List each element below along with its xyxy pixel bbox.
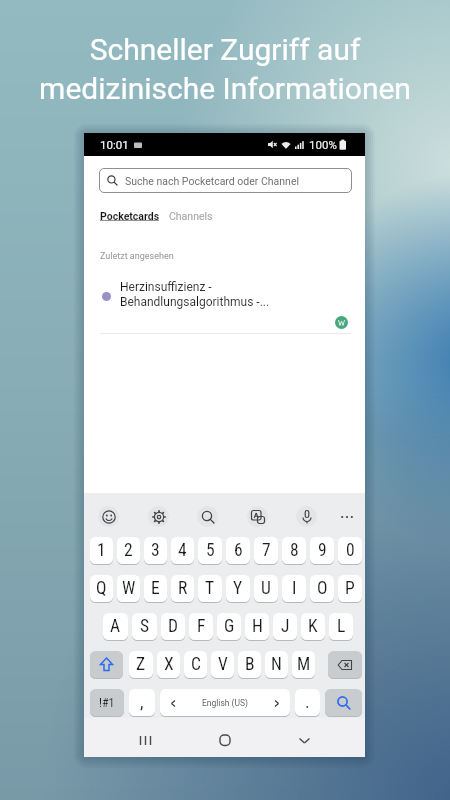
button[interactable]: Q (90, 575, 113, 602)
staticText: 2 (124, 540, 133, 561)
button[interactable] (247, 506, 268, 527)
button[interactable]: 6 (226, 537, 250, 564)
button[interactable]: 2 (117, 537, 140, 564)
button[interactable]: Herzinsuffizienz - Behandlungsalgorithmu… (102, 280, 352, 309)
staticText: 6 (234, 540, 243, 561)
staticText: 8 (290, 540, 299, 561)
button[interactable]: J (273, 613, 297, 640)
staticText: 9 (318, 540, 327, 561)
staticText: G (224, 616, 235, 637)
button[interactable]: A (103, 613, 128, 640)
button[interactable]: T (198, 575, 222, 602)
staticText: C (191, 654, 201, 675)
staticText: P (345, 578, 355, 599)
staticText: Q (96, 578, 107, 599)
staticText: 3 (151, 540, 160, 561)
staticText: X (164, 654, 174, 675)
button[interactable] (90, 651, 123, 678)
button[interactable]: O (310, 575, 334, 602)
button[interactable]: 5 (198, 537, 222, 564)
staticText: B (245, 654, 255, 675)
button[interactable]: 4 (171, 537, 194, 564)
staticText: . (305, 692, 310, 713)
staticText: , (140, 692, 144, 713)
button[interactable]: Y (226, 575, 250, 602)
staticText: A (110, 616, 121, 637)
staticText: 0 (346, 540, 355, 561)
button[interactable]: Suche nach Pocketcard oder Channel (99, 168, 352, 193)
button[interactable]: G (217, 613, 241, 640)
staticText: H (252, 616, 263, 637)
button[interactable]: I (282, 575, 306, 602)
button[interactable]: W (117, 575, 140, 602)
staticText: 7 (262, 540, 271, 561)
button[interactable]: 1 (90, 537, 113, 564)
button[interactable]: P (338, 575, 362, 602)
button[interactable]: D (161, 613, 185, 640)
button[interactable]: Pocketcards (100, 210, 160, 222)
button[interactable]: 9 (310, 537, 334, 564)
button[interactable]: M (292, 651, 315, 678)
staticText: !#1 (99, 696, 115, 710)
staticText: Herzinsuffizienz - Behandlungsalgorithmu… (120, 280, 270, 309)
staticText: M (297, 654, 311, 675)
button[interactable] (148, 506, 169, 527)
button[interactable] (98, 506, 119, 527)
button[interactable] (328, 651, 362, 678)
button[interactable] (296, 506, 317, 527)
staticText: 100% (309, 138, 337, 151)
staticText: V (218, 654, 228, 675)
button[interactable]: 8 (282, 537, 306, 564)
staticText: Zuletzt angesehen (100, 251, 174, 262)
staticText: K (308, 616, 318, 637)
staticText: T (205, 578, 215, 599)
button[interactable]: K (301, 613, 325, 640)
button[interactable]: , (129, 689, 155, 716)
button[interactable] (291, 729, 317, 751)
button[interactable]: R (171, 575, 194, 602)
staticText: E (151, 578, 160, 599)
staticText: U (261, 578, 271, 599)
staticText: F (197, 616, 206, 637)
button[interactable] (325, 689, 362, 716)
button[interactable]: X (157, 651, 180, 678)
staticText: W (122, 578, 136, 599)
button[interactable] (212, 729, 238, 751)
button[interactable]: H (245, 613, 269, 640)
staticText: L (337, 616, 346, 637)
button[interactable] (132, 729, 158, 751)
button[interactable]: U (254, 575, 278, 602)
button[interactable]: C (184, 651, 207, 678)
button[interactable]: Z (129, 651, 153, 678)
button[interactable]: 0 (338, 537, 362, 564)
button[interactable]: E (144, 575, 167, 602)
button[interactable]: B (238, 651, 261, 678)
staticText: Suche nach Pocketcard oder Channel (125, 175, 300, 187)
staticText: 1 (97, 540, 106, 561)
button[interactable]: . (295, 689, 320, 716)
staticText: Y (233, 578, 243, 599)
staticText: N (271, 654, 282, 675)
button[interactable]: F (189, 613, 213, 640)
button[interactable]: Channels (169, 210, 213, 222)
button[interactable] (336, 506, 358, 528)
button[interactable]: N (265, 651, 288, 678)
staticText: English (US) (202, 698, 249, 708)
staticText: Schneller Zugriff auf medizinische Infor… (0, 32, 450, 107)
staticText: Z (136, 654, 146, 675)
staticText: D (168, 616, 178, 637)
staticText: S (140, 616, 150, 637)
staticText: J (281, 616, 290, 637)
button[interactable]: L (329, 613, 353, 640)
button[interactable] (197, 506, 218, 527)
staticText: 4 (178, 540, 187, 561)
button[interactable]: S (132, 613, 157, 640)
staticText: O (317, 578, 328, 599)
button[interactable]: 7 (254, 537, 278, 564)
button[interactable]: 3 (144, 537, 167, 564)
button[interactable]: V (211, 651, 234, 678)
button[interactable]: English (US) (160, 689, 290, 716)
button[interactable]: !#1 (90, 689, 124, 716)
staticText: 10:01 (100, 138, 129, 151)
staticText: 5 (206, 540, 215, 561)
